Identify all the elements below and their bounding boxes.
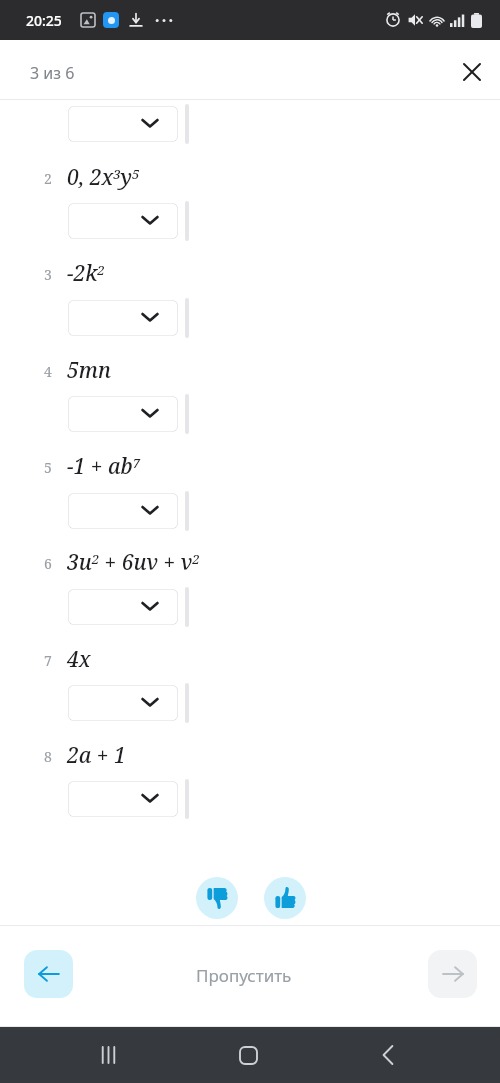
staticText: 4x [67,645,91,674]
staticText: 5 [44,458,52,477]
button[interactable]: Back [368,1035,408,1075]
button[interactable]: Select answer [68,106,178,142]
staticText: 20:25 [26,11,62,30]
staticText: 8 [44,747,52,766]
staticText: 3 [44,265,52,284]
button[interactable]: Select answer [68,589,178,625]
button[interactable]: Select answer [68,781,178,817]
staticText: 6 [44,554,52,573]
button[interactable] [160,950,340,998]
staticText: 7 [44,651,52,670]
button[interactable]: Select answer [68,685,178,721]
staticText: 3u2 + 6uv + v2 [67,548,200,577]
button[interactable]: Select answer [68,396,178,432]
button[interactable]: Select answer [68,203,178,239]
button[interactable]: Dislike [196,877,238,919]
staticText: 5mn [67,356,111,385]
button[interactable]: Home [228,1035,268,1075]
button[interactable]: Select answer [68,300,178,336]
staticText: 3 из 6 [30,62,75,84]
button[interactable]: Like [264,877,306,919]
staticText: 4 [44,362,52,381]
staticText: 0, 2x3y5 [67,163,140,192]
staticText: Пропустить [196,964,292,987]
staticText: 2a + 1 [67,741,126,770]
staticText: 2 [44,169,52,188]
button[interactable]: Close [452,52,492,92]
button[interactable]: Previous [24,950,73,998]
staticText: −1 + ab7 [67,452,140,481]
staticText: −2k2 [67,259,105,288]
button[interactable]: Recents [88,1035,128,1075]
button[interactable]: Next [428,950,477,998]
button[interactable]: Select answer [68,493,178,529]
